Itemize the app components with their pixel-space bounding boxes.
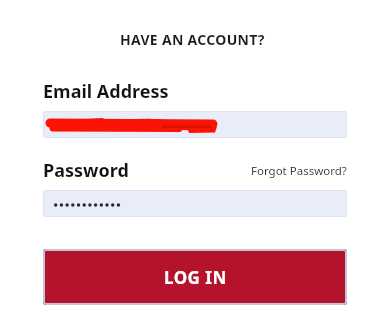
- button[interactable]: LOG IN: [43, 249, 347, 305]
- staticText: HAVE AN ACCOUNT?: [120, 30, 265, 49]
- staticText: Forgot Password?: [251, 163, 347, 179]
- staticText: LOG IN: [164, 266, 227, 289]
- staticText: Email Address: [43, 79, 169, 104]
- staticText: Password: [43, 158, 129, 183]
- button[interactable]: Forgot Password?: [251, 163, 347, 179]
- button[interactable]: [43, 190, 347, 217]
- button[interactable]: [43, 111, 347, 138]
